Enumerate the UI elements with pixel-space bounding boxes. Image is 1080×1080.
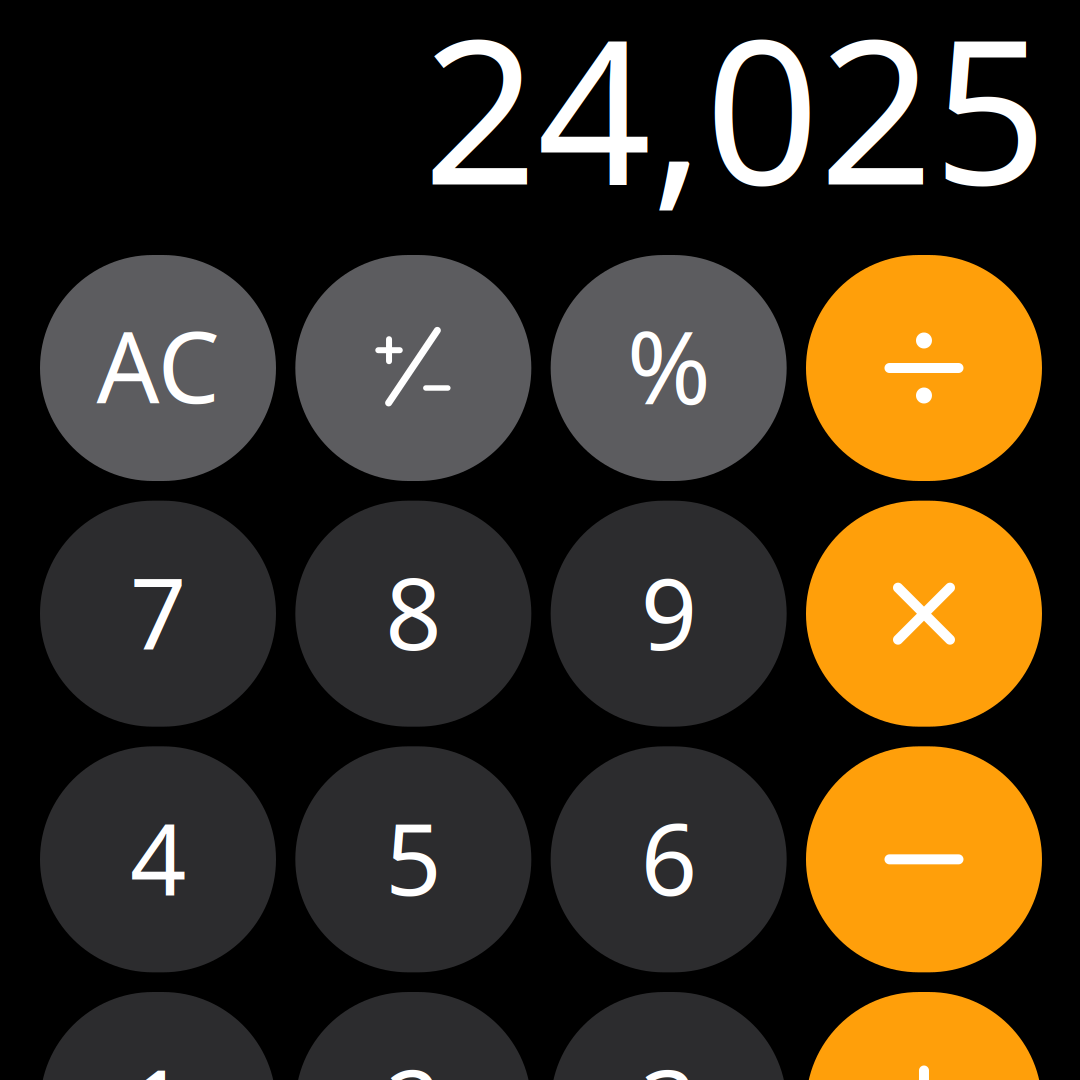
staticText: 1	[130, 1037, 186, 1080]
staticText: 7	[130, 546, 186, 677]
staticText: 24,025	[423, 0, 1047, 240]
button[interactable]: 2	[295, 992, 531, 1080]
button[interactable]: Divide	[806, 255, 1042, 481]
staticText: 9	[641, 546, 697, 677]
button[interactable]: 5	[295, 746, 531, 972]
button[interactable]: Subtract	[806, 746, 1042, 972]
button[interactable]: 3	[551, 992, 787, 1080]
button[interactable]: 7	[40, 501, 276, 727]
button[interactable]: Add	[806, 992, 1042, 1080]
staticText: 3	[641, 1037, 697, 1080]
button[interactable]: 8	[295, 501, 531, 727]
button[interactable]: Toggle sign	[295, 255, 531, 481]
button[interactable]: 4	[40, 746, 276, 972]
button[interactable]: 1	[40, 992, 276, 1080]
staticText: %	[627, 298, 711, 432]
button[interactable]: Percent	[551, 255, 787, 481]
staticText: 4	[130, 792, 186, 923]
button[interactable]: Multiply	[806, 501, 1042, 727]
staticText: 8	[385, 546, 441, 677]
staticText: 2	[385, 1037, 441, 1080]
staticText: AC	[96, 299, 219, 430]
staticText: 6	[641, 792, 697, 923]
button[interactable]: 9	[551, 501, 787, 727]
button[interactable]: 6	[551, 746, 787, 972]
staticText: 5	[385, 792, 441, 923]
button[interactable]: All clear	[40, 255, 276, 481]
